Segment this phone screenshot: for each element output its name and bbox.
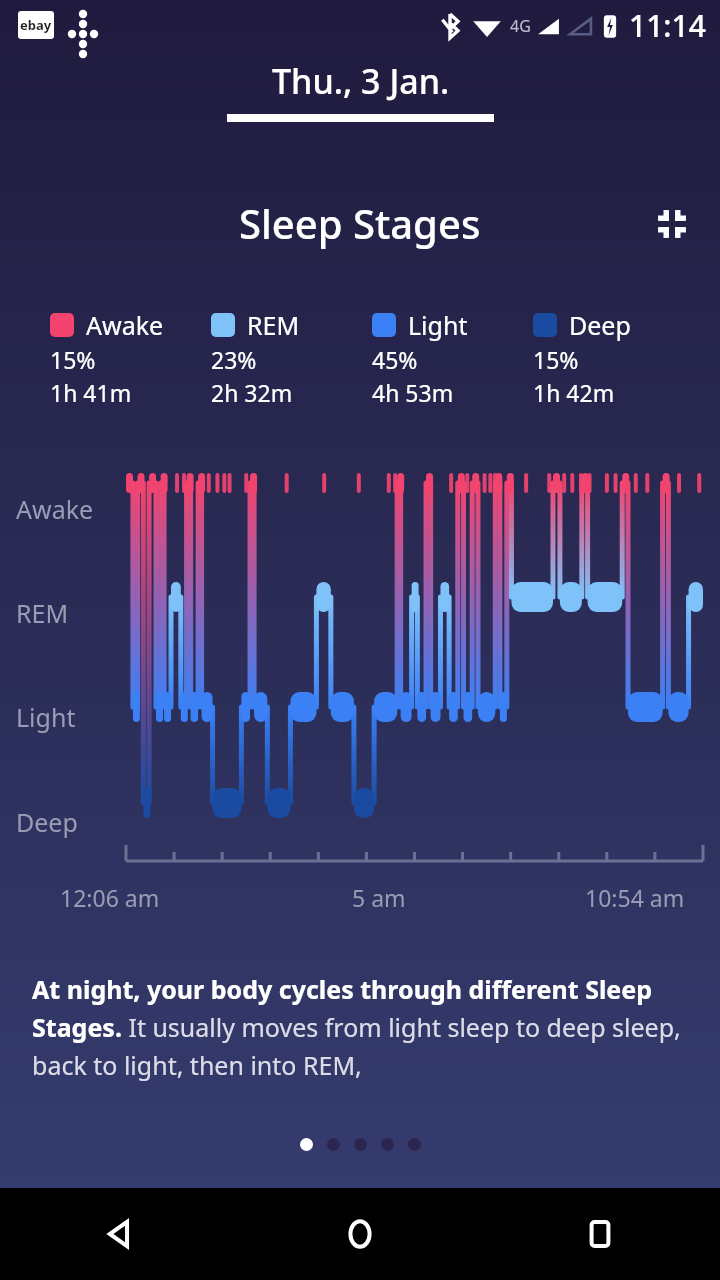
staticText: 23% bbox=[211, 344, 257, 375]
button[interactable]: Recents bbox=[480, 1188, 720, 1280]
staticText: At night, your body cycles through diffe… bbox=[32, 972, 688, 1082]
staticText: REM bbox=[247, 308, 300, 342]
staticText: Thu., 3 Jan. bbox=[272, 58, 450, 104]
staticText: 1h 41m bbox=[50, 377, 132, 408]
staticText: 4h 53m bbox=[372, 377, 454, 408]
staticText: 2h 32m bbox=[211, 377, 293, 408]
staticText: 11:14 bbox=[629, 5, 706, 46]
button[interactable]: Collapse bbox=[652, 204, 692, 244]
staticText: 5 am bbox=[352, 882, 406, 913]
staticText: 4G bbox=[510, 15, 531, 37]
button[interactable]: Home bbox=[240, 1188, 480, 1280]
staticText: 45% bbox=[372, 344, 418, 375]
button[interactable]: Back bbox=[0, 1188, 240, 1280]
staticText: 15% bbox=[533, 344, 579, 375]
staticText: Light bbox=[408, 308, 468, 342]
staticText: Deep bbox=[16, 805, 78, 839]
staticText: REM bbox=[16, 596, 69, 630]
staticText: 1h 42m bbox=[533, 377, 615, 408]
staticText: Awake bbox=[16, 492, 94, 526]
staticText: Deep bbox=[569, 308, 631, 342]
staticText: Sleep Stages bbox=[239, 196, 481, 250]
staticText: ebay bbox=[20, 16, 52, 34]
staticText: Awake bbox=[86, 308, 164, 342]
staticText: 12:06 am bbox=[60, 882, 160, 913]
staticText: Light bbox=[16, 700, 76, 734]
staticText: 10:54 am bbox=[585, 882, 685, 913]
staticText: 15% bbox=[50, 344, 96, 375]
